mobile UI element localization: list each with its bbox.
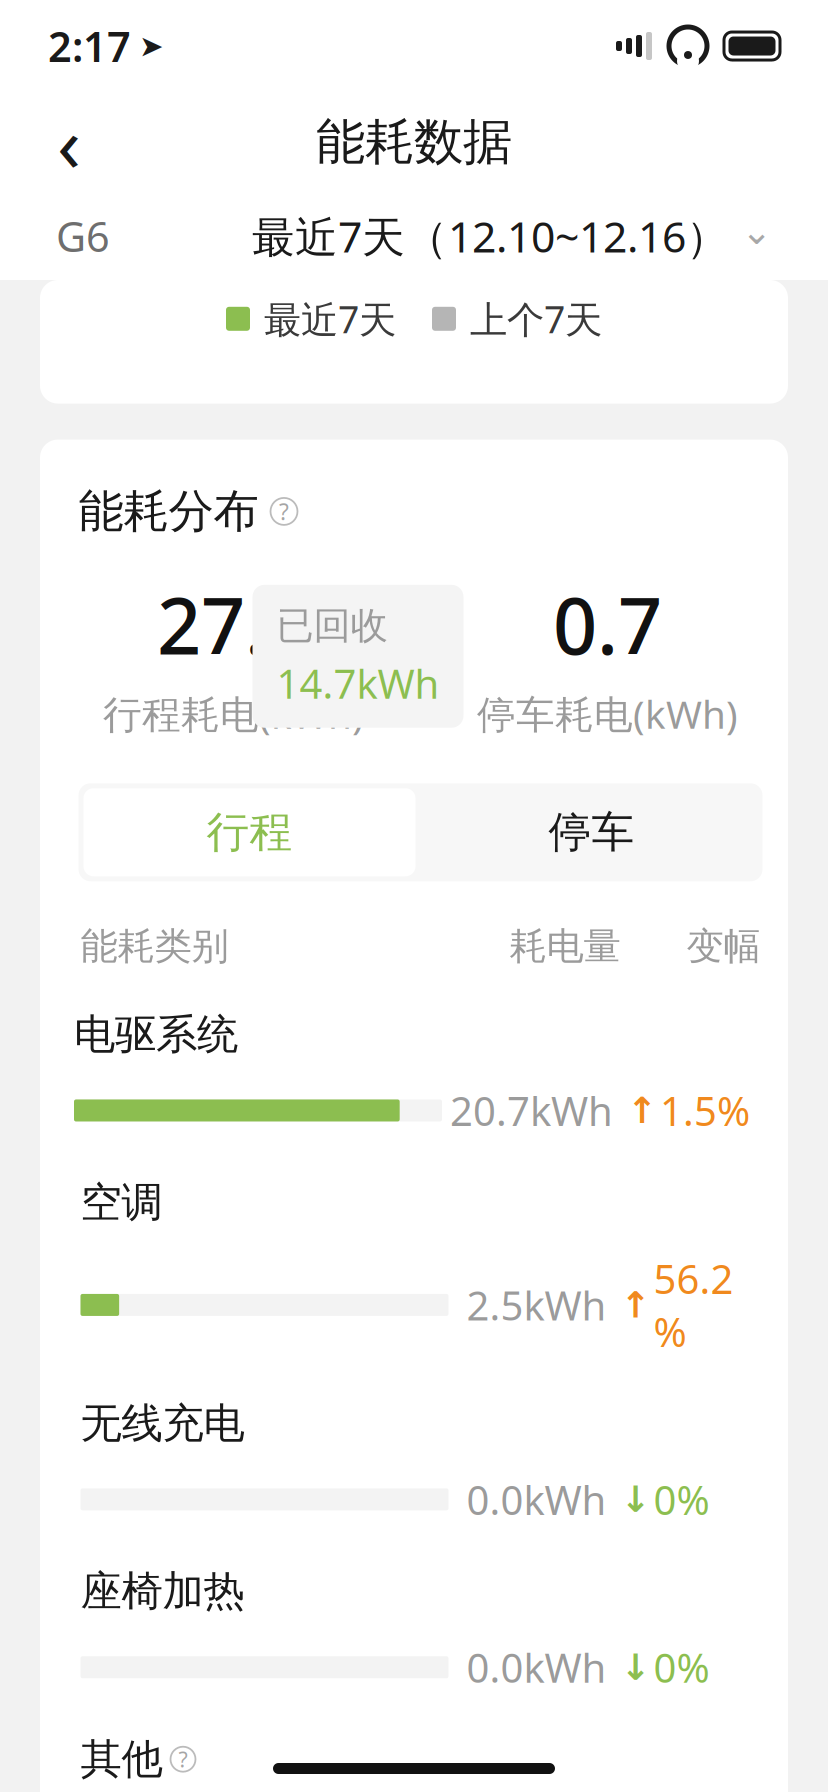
staticText: 行程 <box>206 806 292 858</box>
staticText: 已回收 <box>276 603 387 649</box>
staticText: 变幅 <box>686 923 760 969</box>
button[interactable]: 停车 <box>420 783 762 881</box>
staticText: 停车 <box>548 806 634 858</box>
staticText: ‹ <box>57 91 81 193</box>
staticText: 0.0kWh <box>466 1641 606 1694</box>
staticText: 0% <box>653 1641 709 1694</box>
staticText: 停车耗电(kWh) <box>477 688 738 739</box>
staticText: ? <box>279 496 289 526</box>
staticText: 耗电量 <box>509 923 620 969</box>
staticText: 电驱系统 <box>74 1009 238 1060</box>
staticText: ↑ <box>620 1284 650 1325</box>
staticText: 能耗数据 <box>316 112 512 172</box>
staticText: ↓ <box>620 1647 650 1688</box>
staticText: G6 <box>56 209 110 263</box>
staticText: ↓ <box>620 1479 650 1520</box>
staticText: ➤ <box>139 29 164 63</box>
staticText: 最近7天 <box>264 294 396 344</box>
staticText: 座椅加热 <box>80 1566 244 1617</box>
button[interactable]: 最近7天（12.10~12.16） <box>252 208 772 264</box>
staticText: ? <box>178 1745 187 1773</box>
button[interactable]: 返回 <box>26 99 112 185</box>
staticText: 能耗类别 <box>80 923 228 969</box>
button[interactable]: 能耗分布说明 <box>270 498 297 525</box>
staticText: 20.7kWh <box>450 1084 613 1137</box>
staticText: 行程耗电(kWh) <box>103 688 364 739</box>
staticText: 0% <box>653 1473 709 1526</box>
staticText: 0.7 <box>553 573 662 676</box>
staticText: 1.5% <box>660 1084 750 1137</box>
staticText: 空调 <box>80 1177 162 1228</box>
staticText: 能耗分布 <box>78 484 258 539</box>
staticText: 上个7天 <box>470 294 602 344</box>
staticText: 14.7kWh <box>276 657 439 710</box>
staticText: 其他 <box>80 1734 162 1785</box>
staticText: ↑ <box>627 1090 657 1131</box>
staticText: 2:17 <box>48 19 131 73</box>
staticText: 无线充电 <box>80 1398 244 1449</box>
button[interactable]: 行程 <box>78 783 420 881</box>
staticText: 56.2% <box>653 1252 733 1358</box>
staticText: 最近7天（12.10~12.16） <box>252 208 729 264</box>
staticText: ⌄ <box>741 210 772 252</box>
staticText: 27.4 <box>157 573 310 676</box>
staticText: 0.0kWh <box>466 1473 606 1526</box>
staticText: 2.5kWh <box>466 1278 606 1331</box>
